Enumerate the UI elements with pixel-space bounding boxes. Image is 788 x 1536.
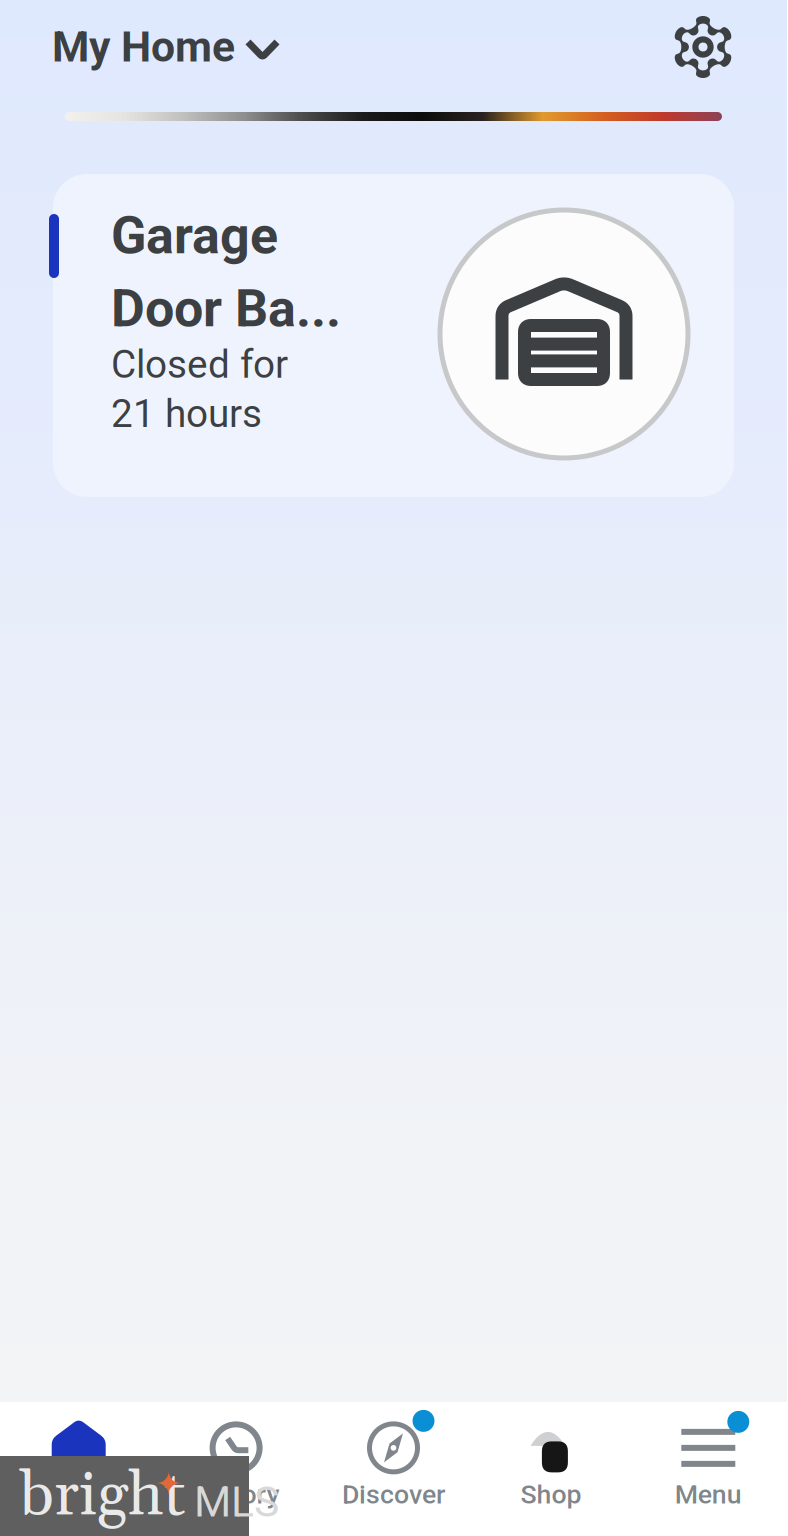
button[interactable]: Settings [660,4,787,90]
button[interactable]: History [157,1401,315,1536]
button[interactable]: Shop [472,1401,630,1536]
staticText: Closed for [111,342,288,387]
button[interactable]: My Home [0,10,277,84]
staticText: 21 hours [111,391,262,436]
staticText: ✦ [155,1465,182,1502]
staticText: My Home [52,22,235,72]
staticText: History [193,1479,280,1510]
staticText: Garage [111,205,278,266]
staticText: Home [43,1479,114,1510]
staticText: Shop [520,1479,581,1510]
button[interactable]: Menu [630,1401,787,1536]
staticText: Discover [342,1479,445,1510]
button[interactable]: Discover [315,1401,472,1536]
staticText: Menu [675,1479,742,1510]
staticText: bright [20,1457,185,1535]
button[interactable]: Garage [0,174,787,497]
staticText: MLS [194,1477,279,1527]
button[interactable]: Home [0,1401,157,1536]
staticText: Door Ba... [111,278,341,339]
